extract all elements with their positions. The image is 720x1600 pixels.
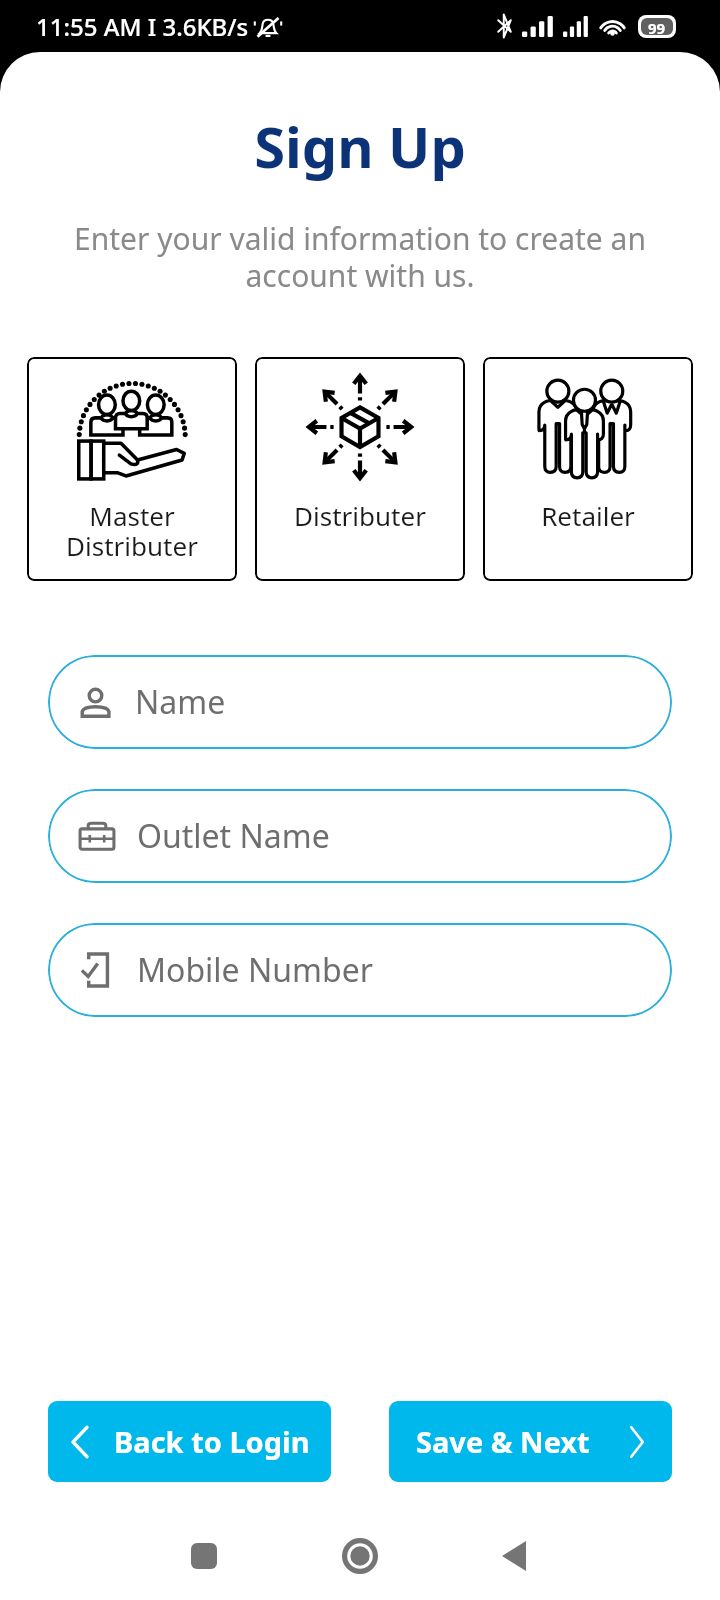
staticText: Save & Next: [416, 1422, 590, 1461]
staticText: 99: [648, 18, 666, 35]
staticText: Distributer: [294, 498, 426, 533]
staticText: Enter your valid information to create a…: [62, 218, 658, 296]
button[interactable]: Distributer: [255, 357, 465, 581]
button[interactable]: Master Distributer: [27, 357, 237, 581]
button[interactable]: Recent apps: [173, 1528, 235, 1584]
staticText: Sign Up: [0, 108, 720, 184]
button[interactable]: Back to Login: [48, 1401, 331, 1482]
staticText: Name: [135, 680, 226, 724]
button[interactable]: Name: [48, 655, 672, 749]
button[interactable]: Mobile Number: [48, 923, 672, 1017]
button[interactable]: Retailer: [483, 357, 693, 581]
button[interactable]: Save & Next: [389, 1401, 672, 1482]
staticText: Mobile Number: [137, 948, 373, 992]
staticText: Master Distributer: [66, 498, 198, 564]
button[interactable]: Home: [329, 1528, 391, 1584]
staticText: Back to Login: [114, 1422, 310, 1461]
staticText: Retailer: [541, 498, 635, 533]
button[interactable]: Back: [483, 1528, 545, 1584]
staticText: Outlet Name: [137, 814, 330, 858]
button[interactable]: Outlet Name: [48, 789, 672, 883]
staticText: 11:55 AM I 3.6KB/s: [36, 10, 249, 43]
